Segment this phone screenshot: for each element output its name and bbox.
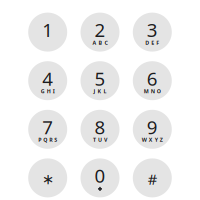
staticText: 1 bbox=[42, 17, 53, 42]
staticText: 7 bbox=[42, 115, 53, 139]
staticText: MNO bbox=[144, 88, 161, 95]
staticText: 6 bbox=[147, 66, 158, 91]
staticText: ABC bbox=[92, 39, 107, 46]
staticText: 0 bbox=[94, 163, 105, 188]
staticText: ∗ bbox=[42, 171, 54, 187]
button[interactable]: Pound bbox=[133, 158, 172, 197]
button[interactable]: 8 TUV bbox=[80, 110, 119, 149]
button[interactable]: 2 ABC bbox=[80, 13, 119, 52]
button[interactable]: 7 PQRS bbox=[28, 110, 67, 149]
button[interactable]: 0 plus bbox=[80, 158, 119, 197]
staticText: DEF bbox=[145, 39, 159, 46]
button[interactable]: 3 DEF bbox=[133, 13, 172, 52]
staticText: 3 bbox=[147, 17, 158, 42]
staticText: 8 bbox=[94, 115, 105, 139]
staticText: WXYZ bbox=[142, 136, 163, 143]
button[interactable]: Star bbox=[28, 158, 67, 197]
staticText: 2 bbox=[94, 17, 105, 42]
staticText: PQRS bbox=[38, 136, 57, 143]
staticText: TUV bbox=[93, 136, 107, 143]
staticText: 9 bbox=[147, 115, 158, 139]
staticText: # bbox=[148, 169, 157, 189]
button[interactable]: 6 MNO bbox=[133, 61, 172, 100]
staticText: 5 bbox=[94, 66, 105, 91]
button[interactable]: 4 GHI bbox=[28, 61, 67, 100]
button[interactable]: 5 JKL bbox=[80, 61, 119, 100]
staticText: 4 bbox=[42, 66, 53, 91]
staticText: GHI bbox=[41, 88, 55, 95]
staticText: JKL bbox=[93, 88, 106, 95]
button[interactable]: 9 WXYZ bbox=[133, 110, 172, 149]
button[interactable]: 1 bbox=[28, 13, 67, 52]
